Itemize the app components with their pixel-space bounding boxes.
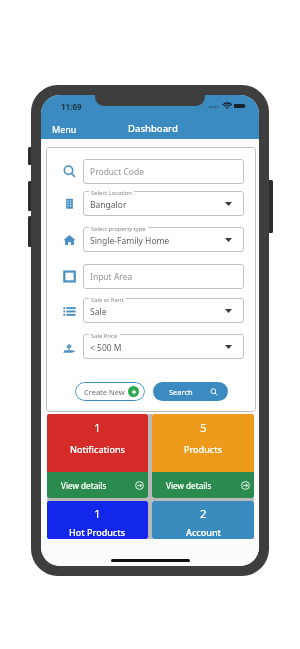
other: View details	[241, 481, 250, 490]
staticText: Input Area	[90, 271, 133, 283]
staticText: Notifications	[70, 443, 125, 455]
button[interactable]: Menu	[41, 119, 88, 139]
staticText: Sale Price	[91, 332, 118, 340]
staticText: 1	[94, 420, 101, 436]
staticText: Select Location	[91, 189, 132, 197]
button[interactable]: 2	[152, 501, 254, 539]
button[interactable]: 1	[47, 414, 148, 498]
button[interactable]	[83, 159, 244, 184]
staticText: 11:09	[61, 101, 82, 112]
button[interactable]	[83, 334, 244, 359]
button[interactable]: Search	[153, 382, 228, 401]
staticText: Search	[169, 387, 193, 397]
staticText: Create New	[84, 387, 125, 397]
button[interactable]: 5	[152, 414, 254, 498]
staticText: Account	[186, 526, 221, 538]
staticText: Select property type	[91, 225, 146, 233]
staticText: Dashboard	[128, 122, 178, 135]
staticText: 1	[94, 506, 101, 522]
button[interactable]: 1	[47, 501, 148, 539]
staticText: Sale or Rent	[91, 296, 124, 304]
staticText: View details	[166, 480, 212, 491]
staticText: View details	[61, 480, 107, 491]
staticText: Single-Family Home	[90, 235, 170, 247]
button[interactable]	[83, 264, 244, 289]
other: View details	[135, 481, 144, 490]
staticText: Products	[184, 443, 223, 455]
staticText: Bangalor	[90, 199, 127, 211]
staticText: Menu	[52, 123, 77, 135]
staticText: 2	[200, 506, 207, 522]
staticText: Sale	[90, 306, 107, 318]
button[interactable]	[83, 298, 244, 323]
button[interactable]	[83, 191, 244, 216]
staticText: < 500 M	[90, 342, 122, 354]
staticText: 5	[200, 420, 207, 436]
staticText: Hot Products	[69, 526, 126, 538]
staticText: Product Code	[90, 166, 145, 178]
button[interactable]	[83, 227, 244, 252]
button[interactable]: Create New	[75, 382, 145, 401]
